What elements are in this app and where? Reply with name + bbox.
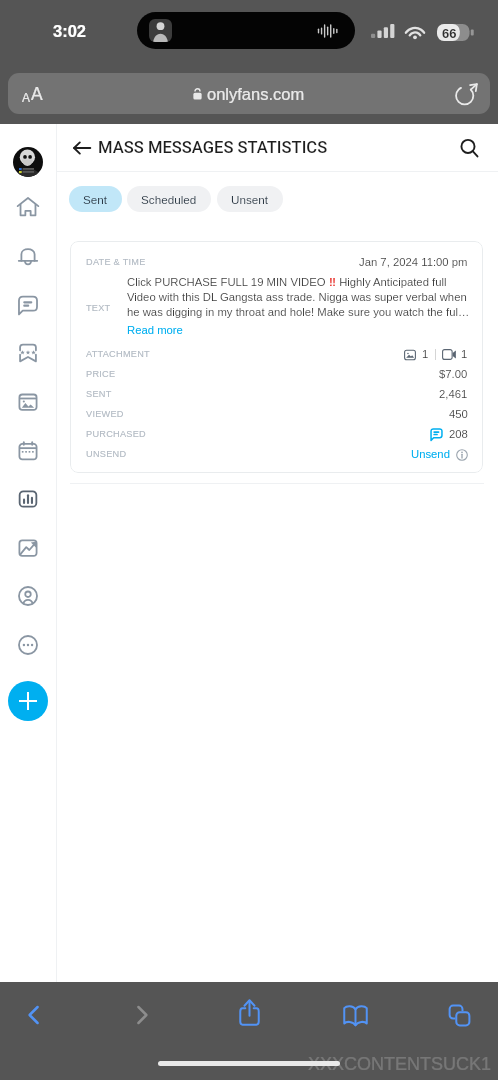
button[interactable]: DATE & TIME [70, 241, 483, 473]
staticText: VIEWED [86, 409, 124, 419]
staticText: 208 [449, 428, 468, 441]
staticText: Highly Anticipated full [336, 276, 447, 289]
staticText: $7.00 [439, 368, 468, 381]
staticText: Unsent [231, 193, 269, 206]
button[interactable]: Forward [125, 998, 158, 1031]
button[interactable]: Reload [452, 80, 479, 107]
staticText: onlyfans.com [207, 85, 305, 103]
button[interactable]: Back [67, 133, 97, 163]
staticText: ‼ [329, 276, 336, 289]
staticText: PURCHASED [86, 429, 146, 439]
button[interactable]: Search [454, 133, 484, 163]
staticText: Jan 7, 2024 11:00 pm [359, 256, 468, 269]
staticText: Read more [127, 324, 183, 337]
button[interactable]: Profile avatar [13, 147, 43, 177]
button[interactable]: Vault [10, 384, 46, 420]
staticText: Click PURCHASE FULL 19 MIN VIDEO [127, 276, 329, 289]
button[interactable]: Statistics [10, 481, 46, 517]
button[interactable]: More [10, 627, 46, 663]
staticText: 66 [442, 26, 457, 41]
staticText: Unsend [411, 448, 450, 461]
staticText: Video with this DL Gangsta ass trade. Ni… [127, 291, 467, 304]
button[interactable]: Share [232, 995, 266, 1029]
button[interactable]: Back [17, 998, 50, 1031]
other: Info [456, 449, 468, 461]
staticText: 3:02 [53, 22, 87, 40]
button[interactable]: A [22, 84, 43, 104]
staticText: 2,461 [439, 388, 468, 401]
button[interactable]: Unsend [411, 448, 450, 461]
staticText: 1 [461, 348, 468, 361]
staticText: MASS MESSAGES STATISTICS [98, 138, 328, 157]
button[interactable]: Unsent [217, 186, 283, 212]
staticText: 1 [422, 348, 429, 361]
staticText: TEXT [86, 303, 111, 313]
staticText: DATE & TIME [86, 257, 146, 267]
button[interactable]: My profile [10, 578, 46, 614]
button[interactable]: A [8, 73, 490, 114]
staticText: PRICE [86, 369, 116, 379]
button[interactable]: Read more [127, 324, 183, 337]
staticText: Sent [83, 193, 108, 206]
staticText: A [31, 84, 43, 104]
staticText: UNSEND [86, 449, 127, 459]
button[interactable]: Promotions [10, 530, 46, 566]
button[interactable]: Queue [10, 433, 46, 469]
button[interactable]: Tabs [442, 998, 476, 1032]
button[interactable]: Messages [10, 287, 46, 323]
staticText: SENT [86, 389, 112, 399]
button[interactable]: Scheduled [127, 186, 211, 212]
staticText: ATTACHMENT [86, 349, 150, 359]
staticText: 450 [449, 408, 468, 421]
staticText: Scheduled [141, 193, 197, 206]
button[interactable]: Notifications [10, 238, 46, 274]
button[interactable]: Collections [10, 335, 46, 371]
staticText: XXXCONTENTSUCK1 [308, 1054, 492, 1074]
button[interactable]: Bookmarks [338, 998, 372, 1032]
button[interactable]: Home [10, 189, 46, 225]
button[interactable]: Sent [69, 186, 122, 212]
staticText: he was digging in my throat and hole! Ma… [127, 306, 471, 319]
button[interactable]: New post [8, 681, 48, 721]
staticText: A [22, 91, 31, 104]
